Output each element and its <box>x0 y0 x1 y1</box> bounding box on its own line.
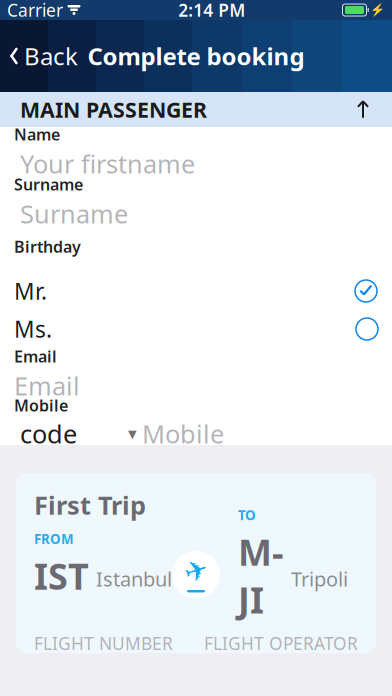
button[interactable]: Mobile <box>0 399 392 445</box>
staticText: First Trip <box>34 488 146 522</box>
staticText: Istanbul <box>96 565 172 592</box>
staticText: MAIN PASSENGER <box>20 95 207 124</box>
staticText: Mobile <box>14 395 68 416</box>
staticText: code <box>20 417 77 450</box>
staticText <box>62 0 68 25</box>
staticText: Name <box>14 124 60 145</box>
staticText: Surname <box>20 197 128 230</box>
staticText: FROM <box>34 530 74 548</box>
staticText: FLIGHT NUMBER <box>34 632 173 655</box>
staticText: Email <box>14 369 80 402</box>
button[interactable]: Birthday <box>0 227 392 271</box>
staticText: MJI <box>238 528 284 623</box>
button[interactable]: Mr. <box>0 272 392 310</box>
button[interactable]: Back <box>0 32 88 80</box>
staticText: Tripoli <box>291 565 348 592</box>
staticText: TO <box>238 506 256 524</box>
staticText: Surname <box>14 174 83 195</box>
staticText: Back <box>24 40 78 72</box>
staticText: Mobile <box>142 417 224 450</box>
staticText: Your firstname <box>20 147 195 180</box>
staticText: ⚡ <box>370 3 385 17</box>
button[interactable]: Name <box>0 127 392 176</box>
staticText: Birthday <box>14 236 81 257</box>
staticText: Carrier <box>7 0 63 21</box>
staticText: Complete booking <box>87 40 304 72</box>
staticText: ▾ <box>128 424 137 443</box>
staticText: Mr. <box>14 276 47 306</box>
staticText: ✈ <box>184 555 207 587</box>
staticText: IST <box>34 552 89 600</box>
staticText: 2:14 PM <box>178 0 245 21</box>
button[interactable]: Email <box>0 349 392 398</box>
button[interactable]: Ms. <box>0 310 392 348</box>
staticText: Email <box>14 346 57 367</box>
button[interactable]: Surname <box>0 177 392 226</box>
button[interactable]: MAIN PASSENGER <box>0 92 392 127</box>
staticText: FLIGHT OPERATOR <box>204 632 358 655</box>
staticText: Ms. <box>14 314 52 344</box>
